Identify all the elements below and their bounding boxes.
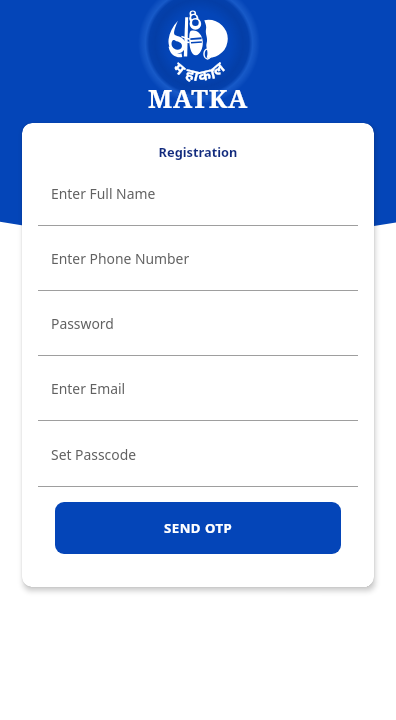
staticText: Registration <box>22 143 374 160</box>
staticText: ल <box>207 56 229 80</box>
staticText: हा <box>184 63 201 85</box>
button[interactable]: Enter Email <box>38 376 358 421</box>
staticText: Set Passcode <box>51 445 137 464</box>
button[interactable]: SEND OTP <box>55 502 341 554</box>
staticText: Enter Phone Number <box>51 249 190 268</box>
staticText: Enter Email <box>51 379 126 398</box>
staticText: Enter Full Name <box>51 184 156 203</box>
staticText: का <box>196 62 217 86</box>
staticText: MATKA <box>0 81 396 116</box>
button[interactable]: Password <box>38 311 358 356</box>
button[interactable]: Enter Full Name <box>38 181 358 226</box>
button[interactable]: Set Passcode <box>38 442 358 487</box>
staticText: SEND OTP <box>164 519 233 537</box>
staticText: Password <box>51 314 114 333</box>
staticText: म <box>170 57 190 79</box>
button[interactable]: Enter Phone Number <box>38 246 358 291</box>
